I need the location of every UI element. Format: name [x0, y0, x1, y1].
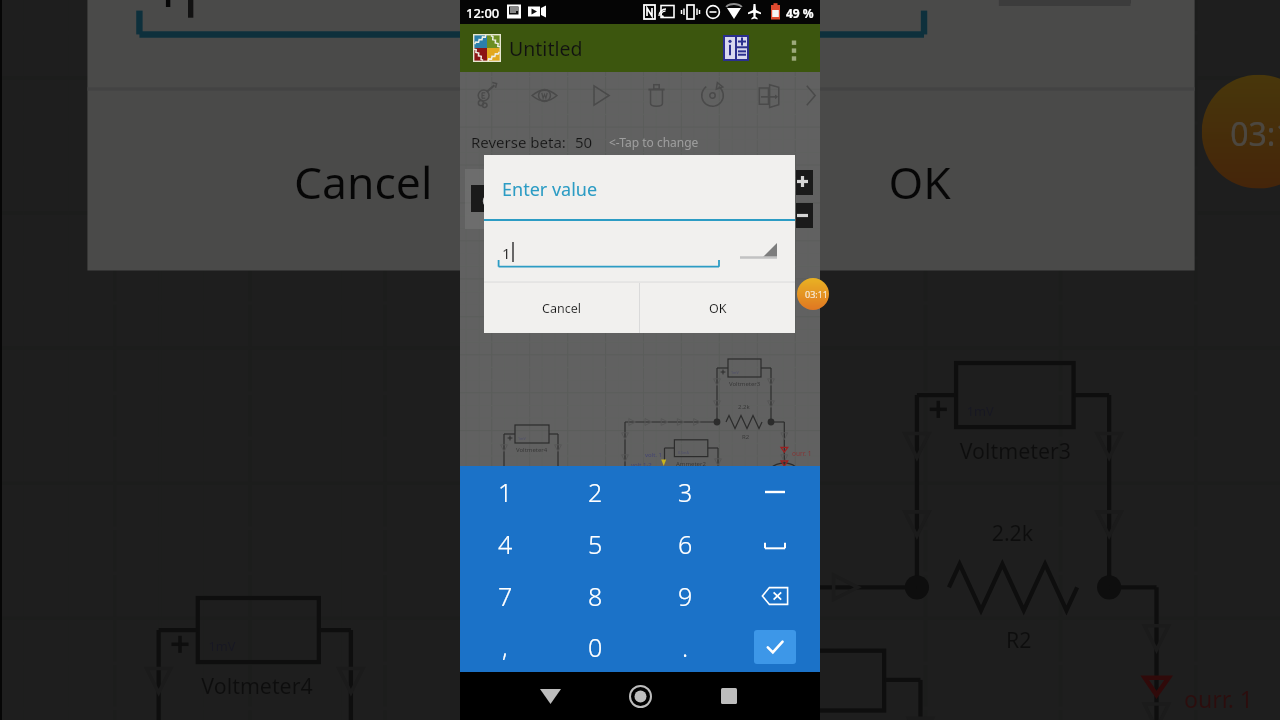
staticText: 8 — [588, 579, 603, 613]
staticText: Voltmeter4 — [201, 673, 315, 701]
staticText: OK — [709, 300, 727, 317]
staticText: 7 — [498, 579, 513, 613]
button[interactable]: 7 — [460, 570, 550, 622]
button[interactable]: Edit — [460, 73, 516, 118]
button[interactable]: Untitled — [509, 35, 583, 62]
staticText: 1mV — [731, 370, 739, 375]
staticText: 0.5mA — [678, 450, 689, 455]
button[interactable]: OK — [640, 283, 795, 333]
staticText: 4 — [498, 527, 513, 561]
staticText: 5 — [588, 527, 603, 561]
button[interactable]: . — [640, 622, 730, 672]
button[interactable]: 0 — [550, 622, 640, 672]
staticText: Voltmeter4 — [516, 446, 548, 454]
button[interactable]: More — [796, 73, 820, 118]
staticText: 1 — [502, 243, 511, 263]
button[interactable]: 9 — [640, 570, 730, 622]
staticText: <-Tap to change — [609, 134, 699, 150]
staticText: . — [682, 630, 689, 664]
staticText: volt. 1 — [645, 451, 662, 459]
staticText: Voltmeter3 — [729, 380, 761, 388]
staticText: ourr. 1 — [792, 449, 812, 458]
staticText: 2.2k — [992, 520, 1034, 548]
button[interactable]: DEL — [730, 570, 820, 622]
button[interactable]: Recents — [705, 680, 753, 712]
button[interactable]: OK — [730, 622, 820, 672]
staticText: R2 — [742, 433, 750, 441]
staticText: 6 — [678, 527, 693, 561]
button[interactable]: , — [460, 622, 550, 672]
button[interactable]: 1 — [460, 466, 550, 518]
button[interactable]: 4 — [460, 518, 550, 570]
button[interactable]: 2 — [550, 466, 640, 518]
button[interactable]: 03:11 — [797, 278, 829, 310]
staticText: Enter value — [502, 177, 598, 202]
button[interactable]: Run — [572, 73, 628, 118]
button[interactable] — [730, 518, 820, 570]
staticText: 1 — [151, 0, 183, 21]
staticText: Reverse beta: — [471, 132, 566, 152]
button[interactable]: Cancel — [484, 283, 639, 333]
staticText: O — [482, 190, 494, 210]
staticText: 49 % — [786, 5, 814, 21]
staticText: Voltmeter3 — [960, 438, 1073, 466]
staticText: 9 — [678, 579, 693, 613]
staticText: Ammeter2 — [676, 460, 706, 468]
staticText: 2.2k — [738, 403, 750, 411]
staticText: 2 — [588, 475, 603, 509]
staticText: , — [502, 630, 508, 664]
button[interactable]: Delete — [628, 73, 684, 118]
staticText: 50 — [575, 132, 593, 152]
button[interactable]: Cancel — [87, 92, 639, 270]
button[interactable]: Back — [526, 680, 574, 712]
staticText: R2 — [1006, 626, 1034, 655]
staticText: Cancel — [294, 153, 433, 213]
button[interactable]: 8 — [550, 570, 640, 622]
button[interactable]: Options — [471, 185, 493, 212]
button[interactable]: Home — [616, 672, 664, 720]
button[interactable]: Zoom out — [796, 203, 813, 228]
staticText: 3 — [678, 475, 693, 509]
button[interactable]: Reverse beta: — [471, 132, 699, 152]
button[interactable]: Reset — [684, 73, 740, 118]
staticText: 12:00 — [466, 4, 500, 22]
staticText: 03:11 — [1230, 110, 1280, 153]
staticText: Cancel — [542, 300, 581, 317]
button[interactable]: 5 — [550, 518, 640, 570]
button[interactable]: Watch — [516, 73, 572, 118]
button[interactable]: More options — [772, 26, 816, 70]
button[interactable]: Zoom in — [796, 170, 813, 195]
staticText: 0 — [588, 630, 603, 664]
button[interactable]: OK — [643, 92, 1195, 270]
button[interactable]: App icon — [473, 34, 501, 62]
staticText: ourr. 1 — [1184, 683, 1255, 715]
button[interactable]: Calculator — [728, 26, 772, 70]
button[interactable] — [730, 466, 820, 518]
staticText: 03:11 — [805, 288, 829, 300]
button[interactable]: 03:11 — [1202, 75, 1280, 189]
button[interactable]: 6 — [640, 518, 730, 570]
button[interactable]: Flip — [740, 73, 796, 118]
staticText: 1 — [498, 475, 513, 509]
button[interactable]: 3 — [640, 466, 730, 518]
staticText: volt.1-2 — [631, 461, 652, 469]
staticText: OK — [888, 153, 952, 213]
staticText: 1mV — [518, 436, 526, 441]
